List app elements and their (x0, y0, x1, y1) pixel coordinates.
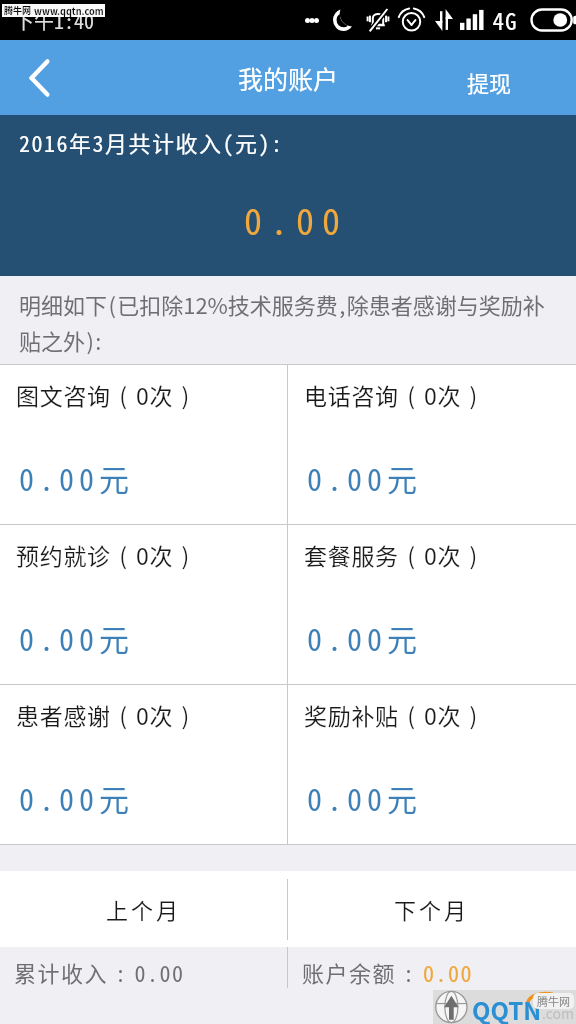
button[interactable]: 下个月 (288, 871, 576, 947)
staticText: 0.00元 (307, 776, 422, 819)
staticText: 累计收入 : 0.00 (14, 956, 185, 988)
staticText: 0.00 (240, 193, 344, 245)
button[interactable]: 上个月 (0, 871, 287, 947)
staticText: 2016年3月共计收入(元): (19, 126, 284, 158)
button[interactable]: Back (0, 40, 78, 115)
button[interactable]: 奖励补贴 ( 0次 ) (288, 685, 576, 844)
staticText: 上个月 (106, 893, 182, 925)
button[interactable]: 预约就诊 ( 0次 ) (0, 525, 287, 684)
staticText: 0.00元 (307, 616, 422, 659)
staticText: 腾牛网 (537, 993, 570, 1009)
button[interactable]: 累计收入 : 0.00 (0, 947, 287, 1024)
staticText: 明细如下 ( 已扣除12%技术服务费 , 除患者感谢与奖励补贴之外 ) : (19, 288, 556, 356)
staticText: 0.00 (423, 956, 474, 988)
staticText: 患者感谢 ( 0次 ) (16, 698, 191, 731)
staticText: 图文咨询 ( 0次 ) (16, 378, 191, 411)
staticText: 0.00元 (19, 456, 134, 499)
button[interactable]: 患者感谢 ( 0次 ) (0, 685, 287, 844)
button[interactable]: 电话咨询 ( 0次 ) (288, 365, 576, 524)
button[interactable]: 账户余额 : (288, 947, 576, 1024)
button[interactable]: 提现 (437, 40, 576, 115)
staticText: 账户余额 : (302, 956, 423, 988)
button[interactable]: 图文咨询 ( 0次 ) (0, 365, 287, 524)
staticText: 4G (492, 3, 517, 36)
staticText: 电话咨询 ( 0次 ) (304, 378, 479, 411)
staticText: .com (542, 1003, 574, 1023)
staticText: 提现 (467, 66, 512, 98)
staticText: 下午1:40 (14, 6, 94, 35)
staticText: 预约就诊 ( 0次 ) (16, 538, 191, 571)
staticText: 下个月 (394, 893, 470, 925)
staticText: 套餐服务 ( 0次 ) (304, 538, 479, 571)
button[interactable]: 套餐服务 ( 0次 ) (288, 525, 576, 684)
staticText: 我的账户 (238, 60, 339, 96)
staticText: QQTN (472, 992, 542, 1024)
staticText: 腾牛网 (4, 4, 32, 17)
staticText: 0.00元 (19, 616, 134, 659)
staticText: 奖励补贴 ( 0次 ) (304, 698, 479, 731)
staticText: 0.00元 (19, 776, 134, 819)
staticText: 0.00元 (307, 456, 422, 499)
staticText: www.qqtn.com (32, 4, 104, 17)
